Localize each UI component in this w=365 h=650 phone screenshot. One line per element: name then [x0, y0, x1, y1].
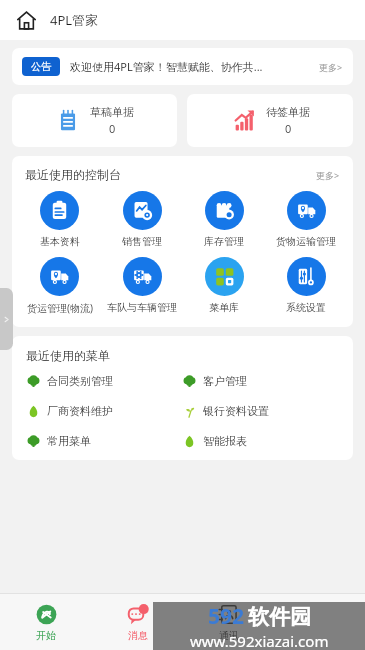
staticText: 库存管理: [204, 235, 244, 248]
staticText: 更多>: [316, 169, 340, 181]
staticText: 开始: [36, 629, 56, 642]
button[interactable]: 银行资料设置: [182, 404, 339, 418]
staticText: www.592xiazai.com: [190, 631, 329, 650]
staticText: 4PL管家: [50, 11, 99, 29]
staticText: 货运管理(物流): [27, 301, 93, 315]
staticText: 货物运输管理: [276, 235, 336, 248]
staticText: 销售管理: [122, 235, 162, 248]
button[interactable]: 待签单据: [187, 94, 353, 147]
staticText: 银行资料设置: [203, 404, 269, 418]
button[interactable]: 货物运输管理: [265, 191, 347, 248]
staticText: 厂商资料维护: [47, 404, 113, 418]
button[interactable]: 车队与车辆管理: [101, 257, 183, 314]
button[interactable]: 更多>: [316, 169, 340, 181]
staticText: 最近使用的菜单: [26, 348, 110, 363]
staticText: 客户管理: [203, 374, 247, 388]
staticText: 592: [208, 602, 245, 631]
staticText: 待签单据: [266, 105, 310, 119]
staticText: 常用菜单: [47, 434, 91, 448]
button[interactable]: Expand panel: [0, 288, 13, 350]
button[interactable]: 销售管理: [101, 191, 183, 248]
staticText: 消息: [128, 629, 148, 642]
button[interactable]: 菜单库: [183, 257, 265, 314]
button[interactable]: 公告: [12, 48, 353, 85]
staticText: 智能报表: [203, 434, 247, 448]
button[interactable]: Home: [14, 8, 38, 32]
staticText: 0: [285, 121, 292, 136]
button[interactable]: 消息: [92, 594, 183, 650]
button[interactable]: 基本资料: [18, 191, 101, 248]
button[interactable]: 通讯: [183, 594, 274, 650]
button[interactable]: 系统设置: [265, 257, 347, 314]
staticText: 欢迎使用4PL管家！智慧赋能、协作共...: [70, 59, 263, 74]
staticText: 最近使用的控制台: [25, 167, 121, 182]
staticText: 公告: [31, 60, 51, 73]
staticText: 0: [109, 121, 116, 136]
button[interactable]: 草稿单据: [12, 94, 177, 147]
staticText: 软件园: [248, 604, 311, 630]
staticText: 合同类别管理: [47, 374, 113, 388]
staticText: 菜单库: [209, 301, 239, 314]
staticText: 基本资料: [40, 235, 80, 248]
button[interactable]: 常用菜单: [26, 434, 182, 448]
button[interactable]: 智能报表: [182, 434, 339, 448]
staticText: 车队与车辆管理: [107, 301, 177, 314]
staticText: 更多>: [319, 61, 343, 73]
button[interactable]: 厂商资料维护: [26, 404, 182, 418]
button[interactable]: 开始: [0, 594, 92, 650]
staticText: 系统设置: [286, 301, 326, 314]
staticText: 通讯: [219, 629, 239, 642]
staticText: 草稿单据: [90, 105, 134, 119]
button[interactable]: 合同类别管理: [26, 374, 182, 388]
button[interactable]: 货运管理(物流): [18, 257, 101, 315]
button[interactable]: 库存管理: [183, 191, 265, 248]
button[interactable]: 客户管理: [182, 374, 339, 388]
